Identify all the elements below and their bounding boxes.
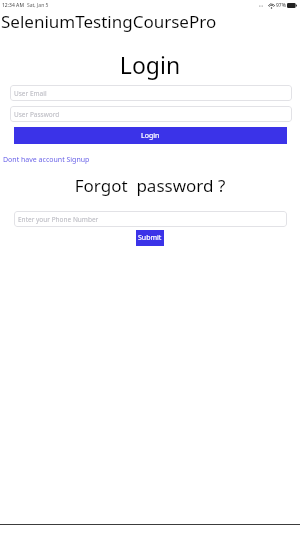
staticText: SeleniumTestingCoursePro	[1, 10, 217, 33]
button[interactable]: Enter your Phone Number	[14, 211, 287, 227]
button[interactable]: Submit	[136, 230, 164, 246]
button[interactable]: User Password	[10, 106, 292, 122]
button[interactable]: Login	[14, 127, 287, 144]
staticText: User Password	[14, 110, 60, 119]
staticText: Submit	[138, 233, 162, 243]
staticText: Login	[141, 131, 160, 141]
button[interactable]: User Email	[10, 85, 292, 101]
staticText: Forgot password ?	[0, 174, 300, 197]
button[interactable]: Dont have account Signup	[3, 155, 90, 165]
staticText: Sat, Jan 5	[27, 2, 49, 9]
staticText: 97%	[276, 2, 286, 9]
staticText: User Email	[14, 89, 47, 98]
staticText: Dont have account Signup	[3, 155, 90, 165]
staticText: Login	[0, 49, 300, 80]
staticText: Enter your Phone Number	[18, 215, 99, 224]
staticText: 12:34 AM	[2, 2, 24, 9]
